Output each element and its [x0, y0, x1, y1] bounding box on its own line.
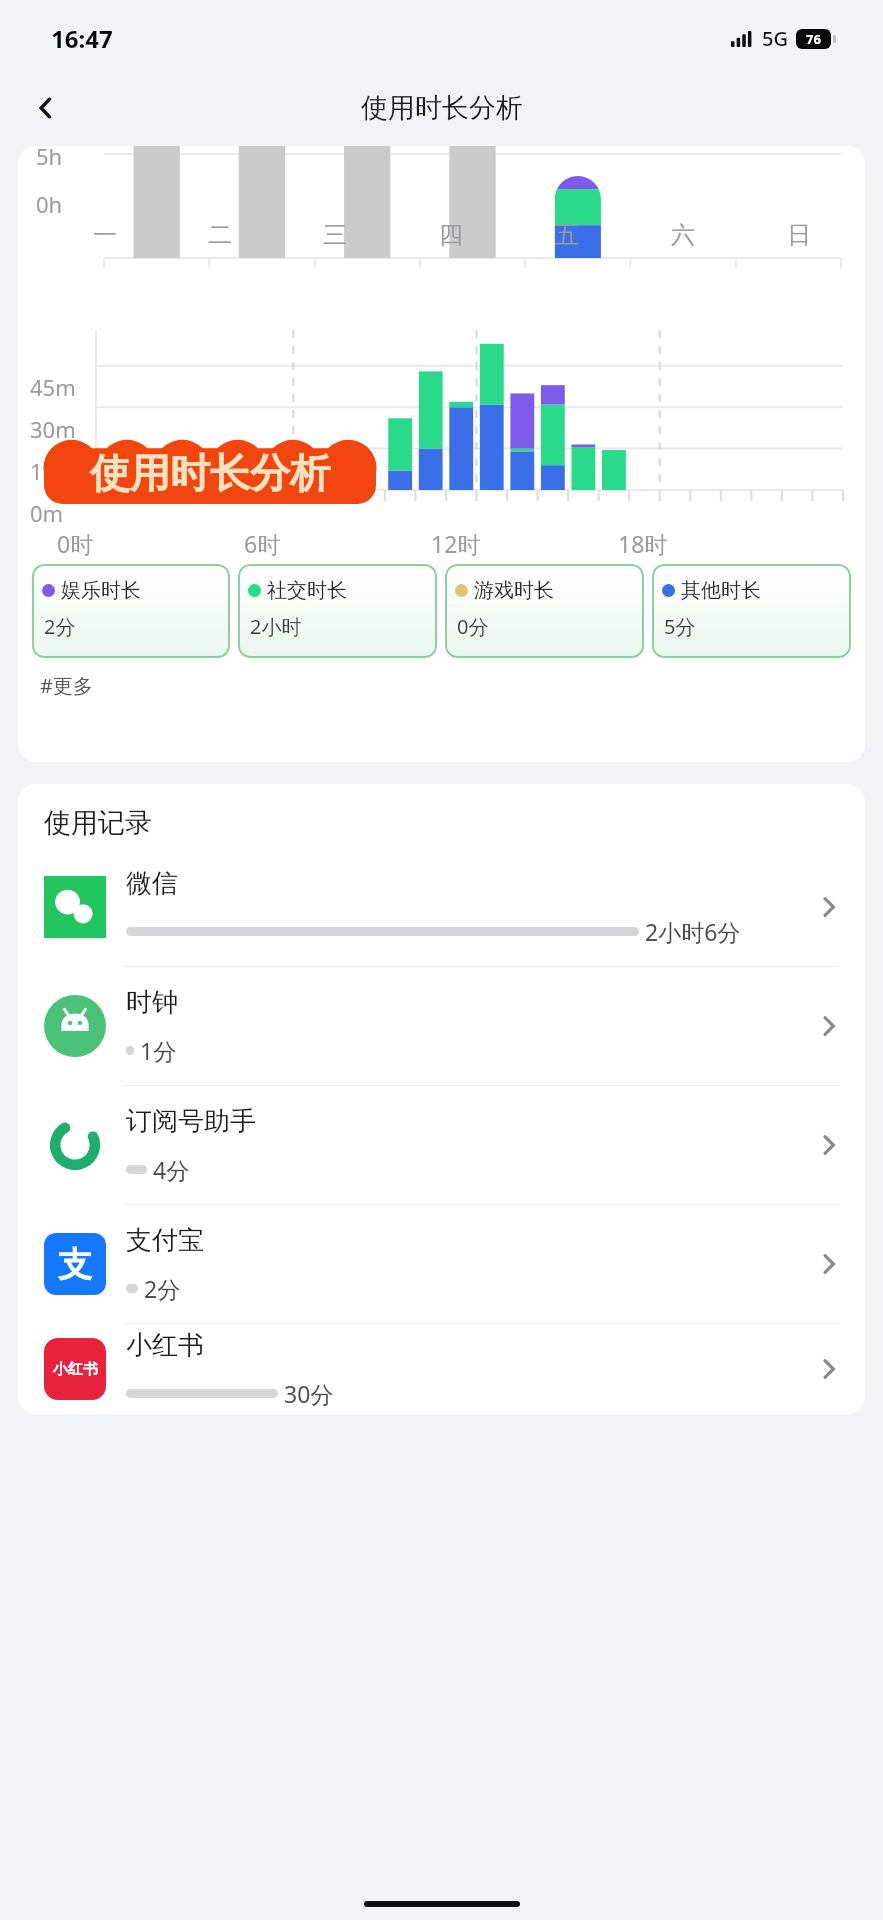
staticText: 15m: [30, 456, 76, 486]
staticText: 小红书: [53, 1360, 98, 1379]
button[interactable]: 支: [18, 1205, 865, 1323]
staticText: 4分: [153, 1154, 190, 1185]
staticText: 5h: [36, 146, 63, 171]
staticText: 2小时: [250, 613, 302, 640]
staticText: #更多: [40, 672, 93, 699]
staticText: 使用时长分析: [90, 448, 330, 498]
staticText: 5分: [664, 613, 696, 640]
button[interactable]: 其他时长: [652, 564, 851, 658]
button[interactable]: 时钟: [18, 967, 865, 1085]
staticText: 16:47: [51, 22, 113, 55]
staticText: 1分: [140, 1035, 177, 1066]
staticText: 0h: [36, 189, 63, 219]
button[interactable]: 订阅号助手: [18, 1086, 865, 1204]
staticText: 2分: [144, 1273, 181, 1304]
staticText: 微信: [126, 867, 178, 900]
staticText: 0m: [30, 498, 64, 528]
button[interactable]: 小红书: [18, 1324, 865, 1414]
staticText: 30分: [284, 1378, 334, 1409]
staticText: 18时: [618, 528, 668, 559]
staticText: 0时: [57, 528, 94, 559]
button[interactable]: 微信: [18, 848, 865, 966]
staticText: 支付宝: [126, 1224, 204, 1257]
staticText: 二: [208, 220, 232, 250]
staticText: 支: [58, 1243, 92, 1286]
staticText: 使用记录: [44, 806, 152, 840]
staticText: 2分: [44, 613, 76, 640]
staticText: 社交时长: [267, 578, 347, 603]
staticText: 12时: [431, 528, 481, 559]
button[interactable]: 娱乐时长: [32, 564, 230, 658]
staticText: 四: [439, 220, 463, 250]
staticText: 0分: [457, 613, 489, 640]
staticText: 一: [93, 220, 117, 250]
staticText: 30m: [30, 414, 76, 444]
staticText: 娱乐时长: [61, 578, 141, 603]
button[interactable]: 社交时长: [238, 564, 437, 658]
staticText: 其他时长: [681, 578, 761, 603]
staticText: 2小时6分: [645, 916, 741, 947]
staticText: 76: [806, 30, 821, 48]
staticText: 游戏时长: [474, 578, 554, 603]
button[interactable]: 游戏时长: [445, 564, 644, 658]
staticText: 订阅号助手: [126, 1105, 256, 1138]
staticText: 六: [671, 220, 695, 250]
button[interactable]: Back: [22, 84, 70, 132]
staticText: 小红书: [126, 1329, 204, 1362]
staticText: 时钟: [126, 986, 178, 1019]
staticText: 三: [323, 220, 347, 250]
staticText: 45m: [30, 372, 76, 402]
staticText: 使用时长分析: [361, 91, 523, 125]
staticText: 五: [555, 220, 579, 250]
staticText: 6时: [244, 528, 281, 559]
staticText: 日: [787, 220, 811, 250]
staticText: 5G: [762, 25, 788, 52]
